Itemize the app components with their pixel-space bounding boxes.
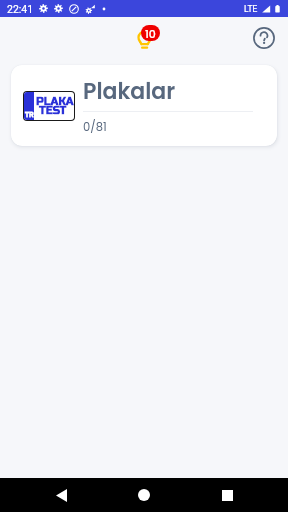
staticText: PLAKA <box>36 95 74 108</box>
staticText: 0/81 <box>83 119 107 135</box>
staticText: TR <box>25 111 34 119</box>
staticText: 10 <box>145 26 156 41</box>
staticText: Plakalar <box>83 76 176 107</box>
button[interactable]: Home <box>122 478 166 512</box>
button[interactable]: Help <box>250 24 278 52</box>
button[interactable]: TR <box>11 65 277 146</box>
staticText: LTE <box>244 4 258 14</box>
button[interactable]: Hints: 10 <box>136 24 160 50</box>
staticText: TEST <box>39 104 67 117</box>
button[interactable]: Back <box>39 478 83 512</box>
staticText: 22:41 <box>7 3 34 15</box>
button[interactable]: Recent apps <box>205 478 249 512</box>
